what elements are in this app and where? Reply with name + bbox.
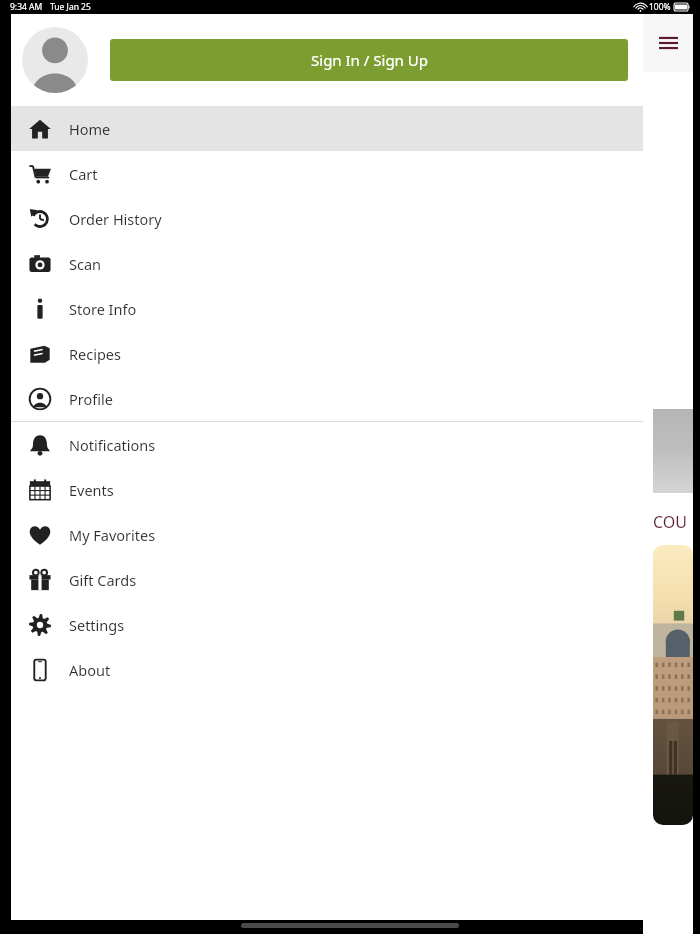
staticText: Settings [69, 615, 125, 635]
button[interactable]: Cart [11, 151, 643, 196]
button[interactable]: Home [11, 106, 643, 151]
staticText: 100% [649, 1, 671, 13]
button[interactable]: Order History [11, 196, 643, 241]
button[interactable]: Profile photo [22, 27, 88, 93]
staticText: Recipes [69, 344, 121, 364]
staticText: Home [69, 119, 111, 139]
button[interactable] [653, 545, 693, 825]
button[interactable]: About [11, 647, 643, 692]
staticText: About [69, 660, 111, 680]
staticText: Gift Cards [69, 570, 137, 590]
staticText: Tue Jan 25 [50, 1, 91, 13]
staticText: Profile [69, 389, 113, 409]
staticText: My Favorites [69, 525, 156, 545]
button[interactable]: Open navigation menu [643, 14, 693, 72]
button[interactable]: Sign In / Sign Up [110, 39, 628, 81]
button[interactable]: Recipes [11, 331, 643, 376]
staticText: Order History [69, 209, 162, 229]
button[interactable]: Notifications [11, 422, 643, 467]
staticText: Notifications [69, 435, 156, 455]
button[interactable]: Profile [11, 376, 643, 421]
button[interactable]: Events [11, 467, 643, 512]
button[interactable]: My Favorites [11, 512, 643, 557]
button[interactable]: Gift Cards [11, 557, 643, 602]
staticText: 9:34 AM [10, 1, 43, 13]
staticText: Scan [69, 254, 102, 274]
staticText: Store Info [69, 299, 137, 319]
button[interactable]: Settings [11, 602, 643, 647]
staticText: COU [653, 511, 687, 533]
staticText: Cart [69, 164, 98, 184]
staticText: Sign In / Sign Up [311, 50, 428, 70]
staticText: Events [69, 480, 114, 500]
button[interactable]: Scan [11, 241, 643, 286]
button[interactable]: Store Info [11, 286, 643, 331]
